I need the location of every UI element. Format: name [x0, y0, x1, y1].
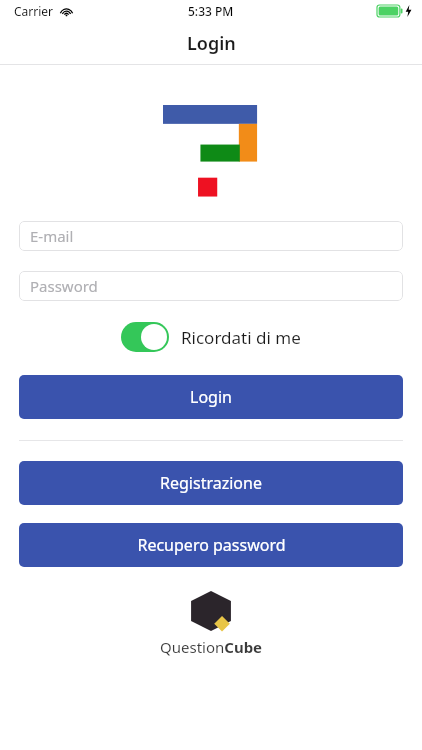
- button[interactable]: Password: [19, 271, 403, 301]
- staticText: 5:33 PM: [188, 3, 234, 19]
- button[interactable]: Ricordati di me: [121, 322, 169, 352]
- button[interactable]: Recupero password: [19, 523, 403, 567]
- staticText: QuestionCube: [160, 637, 263, 657]
- button[interactable]: Login: [19, 375, 403, 419]
- staticText: Login: [190, 386, 232, 408]
- staticText: Password: [30, 276, 98, 296]
- staticText: Login: [187, 31, 236, 56]
- button[interactable]: E-mail: [19, 221, 403, 251]
- staticText: E-mail: [30, 226, 74, 246]
- button[interactable]: Registrazione: [19, 461, 403, 505]
- staticText: Carrier: [14, 3, 54, 19]
- staticText: Ricordati di me: [181, 326, 301, 349]
- staticText: Recupero password: [137, 534, 286, 556]
- staticText: Registrazione: [160, 472, 262, 494]
